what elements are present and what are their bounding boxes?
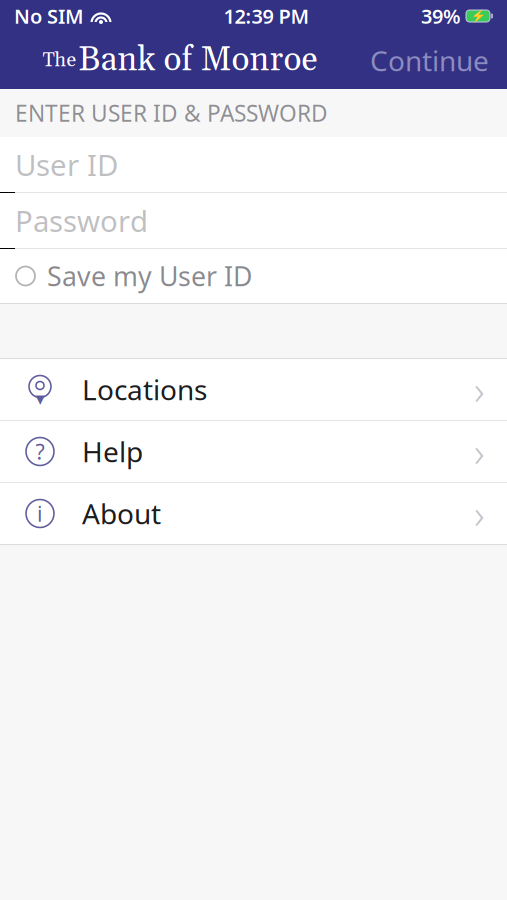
button[interactable]: Password [0,193,507,248]
staticText: 12:39 PM [223,3,309,29]
button[interactable]: ▾ [0,359,507,420]
button[interactable]: Continue [360,36,499,85]
button[interactable]: Save my User ID [0,249,507,303]
staticText: Save my User ID [47,258,252,294]
staticText: About [82,495,161,532]
staticText: User ID [15,145,118,184]
staticText: Continue [370,42,489,79]
staticText: ⚡ [470,9,485,23]
staticText: Password [15,201,148,240]
staticText: › [474,487,485,540]
staticText: Bank of Monroe [78,39,317,82]
staticText: i [37,499,43,528]
staticText: ▾ [35,388,44,409]
staticText: › [474,425,485,478]
staticText: Locations [82,371,207,408]
staticText: The [42,48,76,73]
staticText: › [474,363,485,416]
button[interactable]: i [0,483,507,544]
staticText: Help [82,433,143,470]
button[interactable]: ? [0,421,507,482]
button[interactable]: User ID [0,137,507,192]
staticText: 39% [421,3,461,29]
staticText: ? [35,437,44,466]
staticText: ENTER USER ID & PASSWORD [15,98,328,128]
staticText: No SIM [14,3,84,29]
